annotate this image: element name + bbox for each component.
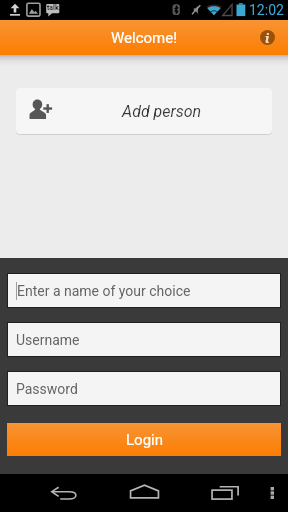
button[interactable]: Add person bbox=[16, 88, 272, 134]
staticText: Add person bbox=[122, 102, 202, 121]
staticText: 12:02 bbox=[249, 2, 284, 18]
staticText: Welcome! bbox=[111, 29, 178, 47]
button[interactable]: Home bbox=[106, 474, 186, 512]
staticText: Password bbox=[16, 381, 78, 397]
staticText: i bbox=[265, 30, 270, 45]
staticText: Login bbox=[126, 431, 163, 449]
staticText: Username bbox=[16, 332, 80, 348]
button[interactable]: Username bbox=[8, 323, 280, 356]
staticText: talk bbox=[47, 4, 59, 12]
button[interactable]: Info bbox=[260, 30, 275, 45]
button[interactable]: More options bbox=[258, 474, 288, 512]
button[interactable]: Login bbox=[7, 423, 281, 456]
button[interactable]: Password bbox=[8, 372, 280, 405]
button[interactable]: Recent apps bbox=[186, 474, 258, 512]
button[interactable]: Back bbox=[0, 474, 106, 512]
button[interactable]: Enter a name of your choice bbox=[8, 274, 280, 307]
staticText: Enter a name of your choice bbox=[17, 283, 191, 299]
